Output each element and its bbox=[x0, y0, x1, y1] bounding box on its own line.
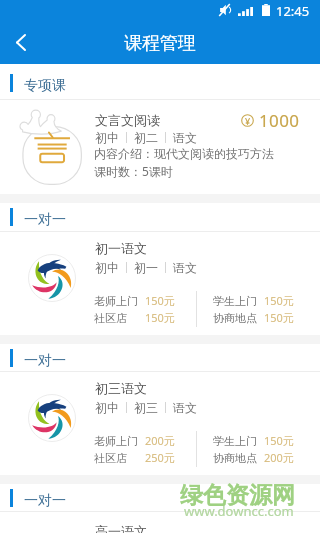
staticText: 内容介绍：现代文阅读的技巧方法 bbox=[94, 146, 274, 161]
staticText: 初中 bbox=[95, 260, 119, 275]
staticText: 语文 bbox=[173, 130, 197, 145]
staticText: 200元 bbox=[264, 450, 294, 465]
staticText: 初一 bbox=[134, 260, 158, 275]
staticText: 专项课 bbox=[24, 77, 66, 95]
staticText: 150元 bbox=[145, 310, 175, 325]
staticText: 1000 bbox=[259, 109, 300, 132]
staticText: 文言文阅读 bbox=[95, 112, 160, 128]
staticText: 社区店 bbox=[94, 311, 127, 325]
staticText: 绿色资源网 bbox=[180, 481, 295, 510]
staticText: 课时数：5课时 bbox=[94, 163, 173, 179]
staticText: 老师上门 bbox=[94, 294, 138, 308]
staticText: 200元 bbox=[145, 433, 175, 448]
staticText: 协商地点 bbox=[213, 451, 257, 465]
staticText: ¥ bbox=[245, 115, 251, 127]
staticText: 社区店 bbox=[94, 451, 127, 465]
staticText: 一对一 bbox=[24, 492, 66, 510]
staticText: 初三 bbox=[134, 400, 158, 415]
staticText: 高一语文 bbox=[95, 523, 147, 533]
button[interactable]: 文言文阅读 bbox=[0, 100, 320, 194]
staticText: 语文 bbox=[173, 400, 197, 415]
staticText: 150元 bbox=[264, 433, 294, 448]
staticText: 初中 bbox=[95, 130, 119, 145]
staticText: 协商地点 bbox=[213, 311, 257, 325]
staticText: 初三语文 bbox=[95, 380, 147, 396]
staticText: 一对一 bbox=[24, 352, 66, 370]
staticText: 12:45 bbox=[276, 2, 310, 20]
staticText: 初二 bbox=[134, 130, 158, 145]
staticText: 初一语文 bbox=[95, 240, 147, 256]
staticText: 150元 bbox=[264, 293, 294, 308]
staticText: 学生上门 bbox=[213, 434, 257, 448]
staticText: www.downcc.com bbox=[184, 502, 294, 520]
button[interactable]: 初一语文 bbox=[0, 232, 320, 335]
staticText: 150元 bbox=[264, 310, 294, 325]
button[interactable]: Back bbox=[0, 20, 42, 64]
staticText: 学生上门 bbox=[213, 294, 257, 308]
button[interactable]: 初三语文 bbox=[0, 372, 320, 475]
staticText: 老师上门 bbox=[94, 434, 138, 448]
staticText: 课程管理 bbox=[124, 32, 196, 55]
staticText: 150元 bbox=[145, 293, 175, 308]
staticText: 初中 bbox=[95, 400, 119, 415]
staticText: 一对一 bbox=[24, 211, 66, 229]
staticText: 语文 bbox=[173, 260, 197, 275]
staticText: 250元 bbox=[145, 450, 175, 465]
